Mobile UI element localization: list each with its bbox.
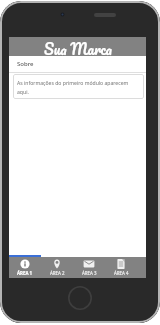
staticText: ÁREA 2: [50, 270, 65, 276]
button[interactable]: Sua Marca: [9, 37, 146, 56]
button[interactable]: ÁREA 3: [73, 257, 105, 278]
button[interactable]: ÁREA 4: [105, 257, 137, 278]
staticText: ÁREA 4: [114, 270, 129, 276]
staticText: aqui.: [17, 89, 29, 96]
button[interactable]: ÁREA 1: [9, 257, 41, 278]
button[interactable]: As informações do primeiro módulo aparec…: [13, 74, 144, 99]
staticText: As informações do primeiro módulo aparec…: [17, 80, 129, 87]
staticText: Sua Marca: [44, 37, 112, 56]
button[interactable]: ÁREA 2: [41, 257, 73, 278]
staticText: ÁREA 3: [82, 270, 97, 276]
staticText: ÁREA 1: [17, 270, 33, 276]
staticText: Sobre: [17, 60, 34, 68]
